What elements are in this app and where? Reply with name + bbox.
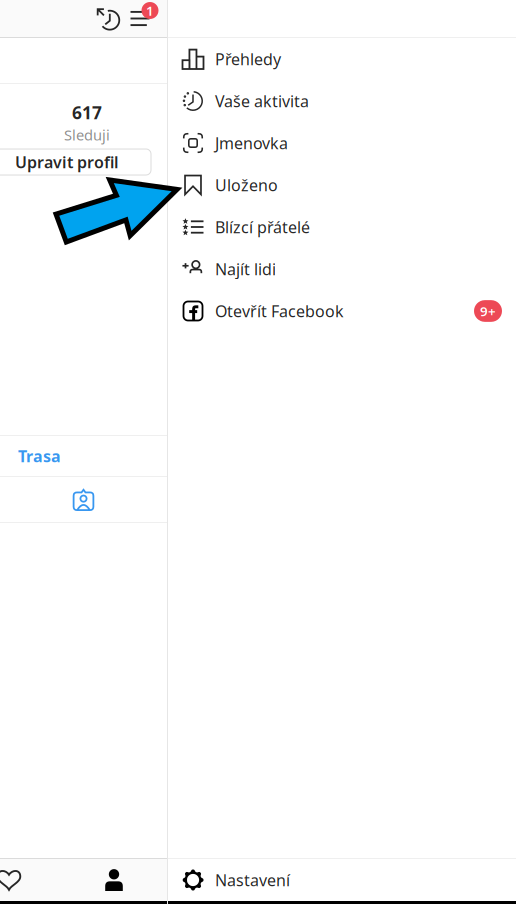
staticText: Najít lidi bbox=[215, 258, 276, 280]
staticText: Přehledy bbox=[215, 48, 281, 70]
button[interactable]: Menu bbox=[125, 0, 167, 37]
button[interactable]: Uloženo bbox=[168, 164, 516, 206]
button[interactable]: Upravit profil bbox=[0, 149, 151, 175]
staticText: 617 bbox=[72, 101, 102, 124]
button[interactable]: Jmenovka bbox=[168, 122, 516, 164]
button[interactable]: Vaše aktivita bbox=[168, 80, 516, 122]
staticText: Sleduji bbox=[64, 125, 110, 144]
staticText: Jmenovka bbox=[215, 132, 288, 154]
staticText: Upravit profil bbox=[15, 151, 119, 173]
button[interactable]: Najít lidi bbox=[168, 248, 516, 290]
staticText: 1 bbox=[146, 2, 154, 19]
staticText: Otevřít Facebook bbox=[215, 300, 344, 322]
button[interactable]: Activity bbox=[0, 859, 35, 901]
staticText: Blízcí přátelé bbox=[215, 216, 310, 238]
button[interactable]: Přehledy bbox=[168, 38, 516, 80]
staticText: Nastavení bbox=[215, 869, 290, 891]
button[interactable]: Nastavení bbox=[168, 859, 516, 901]
staticText: 9+ bbox=[480, 302, 496, 320]
button[interactable]: Profile bbox=[88, 859, 140, 901]
button[interactable]: Tagged photos bbox=[0, 477, 167, 523]
button[interactable]: Otevřít Facebook bbox=[168, 290, 516, 332]
button[interactable]: Trasa bbox=[0, 436, 167, 476]
staticText: Uloženo bbox=[215, 174, 278, 196]
button[interactable]: Archive bbox=[91, 0, 125, 37]
staticText: Trasa bbox=[18, 445, 61, 467]
staticText: Vaše aktivita bbox=[215, 90, 309, 112]
button[interactable]: Blízcí přátelé bbox=[168, 206, 516, 248]
